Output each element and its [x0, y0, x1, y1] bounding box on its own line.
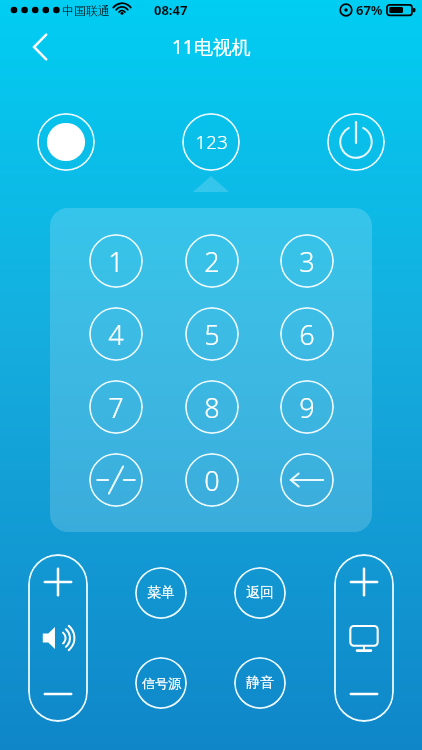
staticText: 0 — [204, 462, 220, 499]
button[interactable]: Volume up — [28, 554, 88, 610]
button[interactable]: Dash — [89, 453, 143, 507]
staticText: 2 — [204, 243, 220, 280]
staticText: 5 — [204, 316, 220, 353]
staticText: 中国联通 — [62, 3, 110, 18]
staticText: 08:47 — [154, 1, 188, 19]
button[interactable]: Power — [327, 113, 385, 171]
button[interactable]: Record — [37, 113, 95, 171]
button[interactable]: 返回 — [234, 567, 286, 619]
staticText: 67% — [356, 1, 383, 19]
button[interactable]: Channel down — [334, 666, 394, 722]
button[interactable]: Back — [18, 25, 62, 69]
staticText: 4 — [108, 316, 124, 353]
button[interactable]: 123 — [182, 113, 240, 171]
staticText: 11电视机 — [172, 34, 251, 60]
staticText: 123 — [195, 129, 228, 155]
button[interactable]: 0 — [185, 453, 239, 507]
button[interactable]: 5 — [185, 307, 239, 361]
staticText: 8 — [204, 389, 220, 426]
button[interactable]: 菜单 — [135, 567, 187, 619]
staticText: 返回 — [246, 584, 274, 602]
button[interactable]: Backspace — [280, 453, 334, 507]
button[interactable]: Channel — [334, 610, 394, 666]
button[interactable]: 9 — [280, 380, 334, 434]
button[interactable]: Volume — [28, 610, 88, 666]
staticText: 菜单 — [147, 584, 175, 602]
button[interactable]: 6 — [280, 307, 334, 361]
button[interactable]: Volume down — [28, 666, 88, 722]
staticText: 1 — [108, 243, 124, 280]
button[interactable]: 静音 — [234, 657, 286, 709]
staticText: 7 — [108, 389, 124, 426]
staticText: 静音 — [246, 674, 274, 692]
button[interactable]: 信号源 — [135, 657, 187, 709]
staticText: 6 — [299, 316, 315, 353]
button[interactable]: 7 — [89, 380, 143, 434]
button[interactable]: 2 — [185, 234, 239, 288]
button[interactable]: 3 — [280, 234, 334, 288]
staticText: 3 — [299, 243, 315, 280]
button[interactable]: 8 — [185, 380, 239, 434]
button[interactable]: 4 — [89, 307, 143, 361]
button[interactable]: Channel up — [334, 554, 394, 610]
staticText: 信号源 — [142, 675, 181, 691]
button[interactable]: 1 — [89, 234, 143, 288]
staticText: 9 — [299, 389, 315, 426]
